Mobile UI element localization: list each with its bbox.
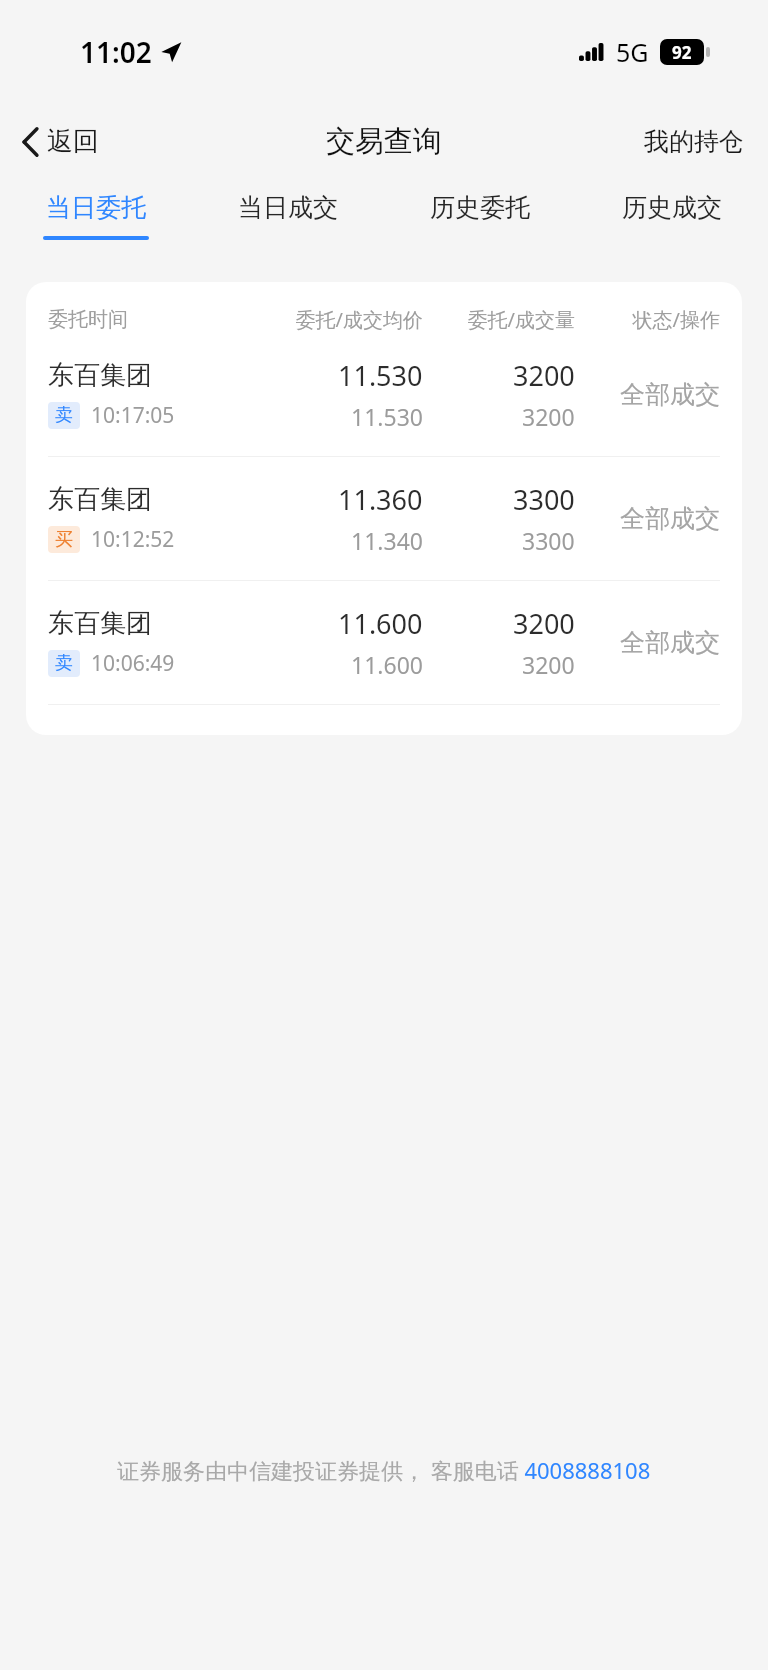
staticText: 11.600: [351, 649, 423, 680]
staticText: 委托/成交均价: [235, 306, 423, 333]
staticText: 交易查询: [326, 123, 442, 160]
staticText: 委托/成交量: [423, 306, 575, 333]
staticText: 10:06:49: [91, 649, 175, 678]
button[interactable]: 当日委托: [0, 178, 192, 258]
staticText: 当日成交: [238, 192, 338, 223]
button[interactable]: 历史委托: [384, 178, 576, 258]
staticText: 我的持仓: [644, 126, 744, 157]
staticText: 3200: [522, 401, 575, 432]
staticText: 东百集团: [48, 359, 152, 392]
staticText: 3300: [513, 481, 575, 518]
staticText: 全部成交: [620, 627, 720, 658]
staticText: 东百集团: [48, 483, 152, 516]
button[interactable]: 东百集团: [26, 581, 742, 704]
staticText: 11.600: [338, 605, 423, 642]
button[interactable]: 东百集团: [26, 457, 742, 580]
button[interactable]: 历史成交: [576, 178, 768, 258]
staticText: 92: [672, 41, 692, 64]
staticText: 11:02: [80, 33, 152, 71]
staticText: 3200: [522, 649, 575, 680]
staticText: 3200: [513, 605, 575, 642]
staticText: 历史委托: [430, 192, 530, 223]
staticText: 历史成交: [622, 192, 722, 223]
staticText: 东百集团: [48, 607, 152, 640]
staticText: 11.530: [338, 357, 423, 394]
staticText: 3200: [513, 357, 575, 394]
staticText: 10:12:52: [91, 525, 175, 554]
staticText: 3300: [522, 525, 575, 556]
staticText: 11.530: [351, 401, 423, 432]
staticText: 全部成交: [620, 379, 720, 410]
staticText: 卖: [55, 652, 73, 675]
staticText: 返回: [47, 125, 99, 158]
button[interactable]: 东百集团: [26, 333, 742, 456]
staticText: 11.360: [338, 481, 423, 518]
staticText: 委托时间: [48, 307, 235, 332]
staticText: 买: [55, 528, 73, 551]
staticText: 5G: [616, 35, 649, 69]
staticText: 全部成交: [620, 503, 720, 534]
staticText: 卖: [55, 404, 73, 427]
staticText: 证券服务由中信建投证券提供， 客服电话 4008888108: [117, 1455, 651, 1485]
staticText: 状态/操作: [575, 306, 720, 333]
staticText: 11.340: [351, 525, 423, 556]
button[interactable]: 我的持仓: [628, 116, 768, 167]
staticText: 当日委托: [46, 192, 146, 223]
button[interactable]: 返回: [0, 115, 115, 168]
staticText: 10:17:05: [91, 401, 175, 430]
button[interactable]: 当日成交: [192, 178, 384, 258]
